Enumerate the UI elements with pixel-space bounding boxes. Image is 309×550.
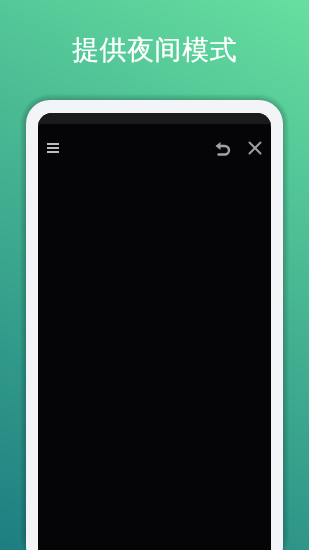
staticText: 提供夜间模式 xyxy=(0,33,309,67)
button[interactable] xyxy=(244,137,266,159)
button[interactable] xyxy=(42,137,64,159)
button[interactable] xyxy=(211,137,233,159)
